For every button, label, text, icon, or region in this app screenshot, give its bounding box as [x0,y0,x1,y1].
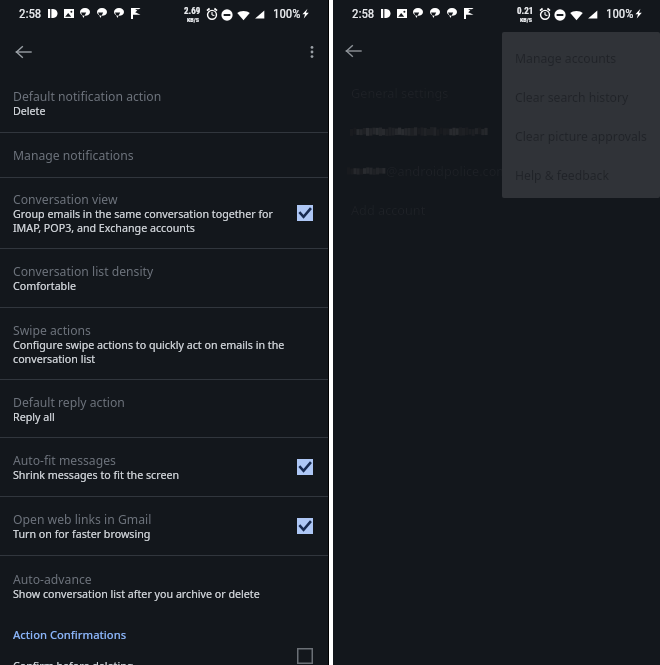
staticText: Help & feedback [515,167,609,184]
staticText: 2:58 [19,6,42,21]
staticText: Manage notifications [13,147,134,163]
staticText: Auto-advance [13,571,92,587]
button[interactable]: Toggle setting [288,648,322,659]
button[interactable]: Navigate up [16,31,31,73]
button[interactable]: Conversation list density [0,249,328,307]
staticText: Conversation view [13,191,118,207]
button[interactable]: General settings [333,72,660,112]
staticText: Clear search history [515,89,629,106]
staticText: Default notification action [13,88,162,104]
staticText: Swipe actions [13,322,91,338]
staticText: Comfortable [13,279,76,293]
button[interactable]: Toggle setting [288,509,322,543]
button[interactable]: Manage notifications [0,133,328,177]
button[interactable]: Auto-fit messages [0,438,328,496]
button[interactable]: Toggle setting [288,450,322,484]
button[interactable] [333,112,660,151]
staticText: Configure swipe actions to quickly act o… [13,338,322,366]
staticText: 2:58 [352,6,375,21]
button[interactable]: Open web links in Gmail [0,497,328,555]
staticText: Shrink messages to fit the screen [13,468,180,482]
staticText: 100% [606,6,634,21]
staticText: Manage accounts [515,50,617,67]
button[interactable]: Default notification action [0,73,328,132]
button[interactable]: Navigate up [346,30,361,72]
button[interactable]: Default reply action [0,380,328,437]
staticText: Open web links in Gmail [13,511,152,527]
staticText: Conversation list density [13,263,154,279]
staticText: Confirm before deleting [13,659,134,665]
staticText: Show conversation list after you archive… [13,587,260,601]
button[interactable]: Conversation view [0,178,328,248]
staticText: Clear picture approvals [515,128,647,145]
button[interactable]: Swipe actions [0,308,328,379]
staticText: KB/S [187,17,199,24]
staticText: @androidpolice.com [386,162,509,179]
staticText: Auto-fit messages [13,452,116,468]
button[interactable]: Auto-advance [0,556,328,615]
staticText: Delete [13,104,46,118]
button[interactable]: More options [296,31,328,73]
staticText: 100% [273,6,301,21]
staticText: Reply all [13,410,55,424]
staticText: Action Confirmations [13,627,127,642]
staticText: 0.21 [517,6,534,17]
staticText: Default reply action [13,394,125,410]
button[interactable]: @androidpolice.com [333,151,660,190]
button[interactable]: Add account [333,190,660,228]
staticText: Turn on for faster browsing [13,527,151,541]
button[interactable]: Action Confirmations [0,615,328,654]
button[interactable]: Confirm before deleting [0,654,328,665]
staticText: 2.69 [184,6,201,17]
staticText: Group emails in the same conversation to… [13,207,285,235]
button[interactable]: Toggle setting [288,196,322,230]
staticText: KB/S [520,17,532,24]
